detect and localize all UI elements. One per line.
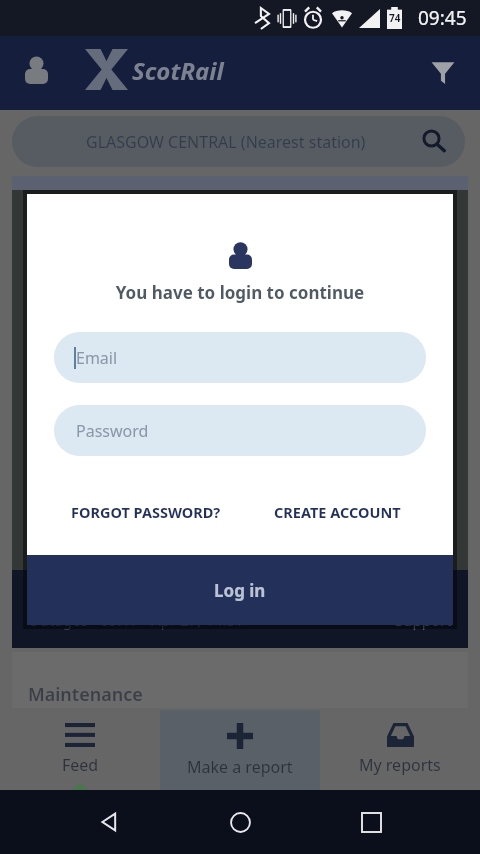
staticText: Log in	[214, 579, 266, 602]
button[interactable]: Account	[12, 46, 60, 94]
staticText: Feed	[62, 754, 99, 776]
staticText: 09:45	[418, 5, 467, 31]
staticText: You have to login to continue	[27, 281, 453, 304]
button[interactable]: Feed	[0, 710, 160, 790]
staticText: Password	[76, 420, 149, 442]
button[interactable]: Email	[54, 332, 426, 383]
staticText: ScotRail	[132, 54, 224, 87]
staticText: Support	[395, 610, 452, 630]
button[interactable]: Log in	[27, 555, 453, 625]
button[interactable]: Make a report	[160, 710, 320, 790]
staticText: My reports	[359, 754, 441, 776]
button[interactable]: Password	[54, 405, 426, 456]
button[interactable]: Filter	[419, 47, 467, 95]
button[interactable]: Home	[218, 800, 262, 844]
button[interactable]: GLASGOW CENTRAL (Nearest station)	[12, 116, 465, 167]
button[interactable]: Recents	[349, 800, 393, 844]
staticText: GLASGOW CENTRAL (Nearest station)	[86, 131, 366, 153]
staticText: Maintenance	[28, 682, 143, 707]
button[interactable]: FORGOT PASSWORD?	[71, 502, 221, 522]
button[interactable]: My reports	[320, 710, 480, 790]
staticText: 74	[389, 11, 401, 25]
staticText: Make a report	[187, 756, 293, 778]
button[interactable]: CREATE ACCOUNT	[274, 502, 401, 522]
button[interactable]: Back	[87, 800, 131, 844]
staticText: Email	[76, 347, 118, 369]
staticText: CREATE ACCOUNT	[274, 502, 401, 522]
staticText: FORGOT PASSWORD?	[71, 502, 221, 522]
staticText: Outages - 09:17 - Apr 27, 14:51	[28, 610, 244, 630]
